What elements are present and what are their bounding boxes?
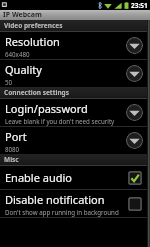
staticText: Port xyxy=(5,129,27,144)
staticText: Enable audio xyxy=(5,170,72,185)
staticText: Leave blank if you don't need security xyxy=(5,117,115,125)
button[interactable]: Enable audio xyxy=(0,166,147,189)
button[interactable]: Unchecked xyxy=(127,196,143,212)
staticText: Disable notification xyxy=(5,192,105,207)
staticText: 8080 xyxy=(5,145,20,153)
button[interactable]: Quality xyxy=(0,60,147,87)
staticText: 640x480 xyxy=(5,50,30,58)
staticText: Don't show app running in background xyxy=(5,208,119,216)
button[interactable]: Disable notification xyxy=(0,190,147,217)
staticText: Quality xyxy=(5,62,42,77)
staticText: 50 xyxy=(5,78,13,86)
button[interactable]: Port xyxy=(0,127,147,154)
staticText: Login/password xyxy=(5,101,88,116)
button[interactable]: Resolution xyxy=(0,32,147,59)
staticText: Connection settings xyxy=(4,88,69,97)
staticText: Video preferences xyxy=(4,21,63,30)
button[interactable]: Open options xyxy=(126,37,143,54)
button[interactable]: Open options xyxy=(126,104,143,121)
staticText: 23:51 xyxy=(131,1,148,10)
button[interactable]: Checked xyxy=(127,170,143,186)
button[interactable]: Open options xyxy=(126,65,143,82)
staticText: IP Webcam xyxy=(3,10,42,20)
button[interactable]: Login/password xyxy=(0,99,147,126)
button[interactable]: Open options xyxy=(126,132,143,149)
staticText: Resolution xyxy=(5,34,60,49)
staticText: Misc xyxy=(4,155,19,164)
